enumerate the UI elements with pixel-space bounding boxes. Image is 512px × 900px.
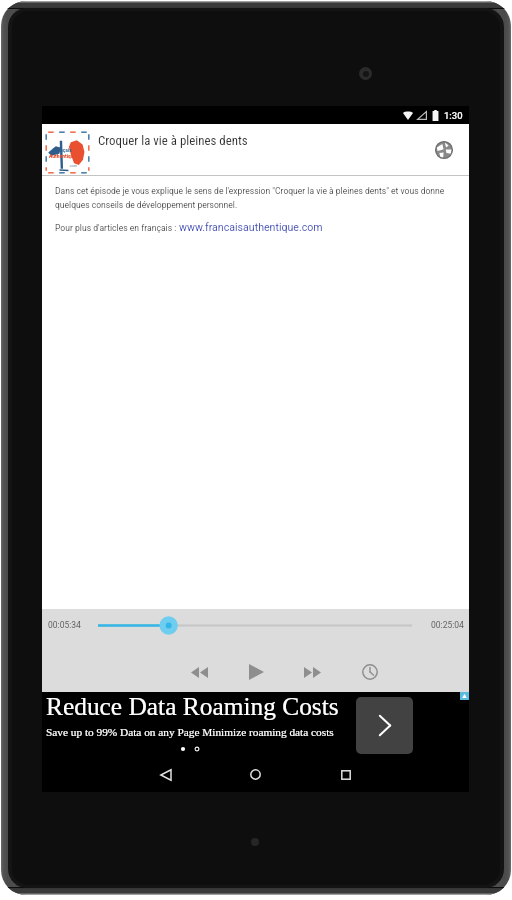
button[interactable]: Home [238,757,273,792]
button[interactable]: www.francaisauthentique.com [179,221,323,233]
button[interactable]: Play [237,653,275,691]
staticText: Save up to 99% Data on any Page Minimize… [46,726,334,739]
staticText: Pour plus d'articles en français : [55,223,179,233]
button[interactable]: Next ad [356,697,413,754]
staticText: 00:25:04 [431,620,464,630]
button[interactable]: Seek bar [88,615,422,636]
button[interactable]: Back [148,757,183,792]
staticText: 00:05:34 [48,620,81,630]
button[interactable]: Reduce Data Roaming Costs [42,692,469,757]
staticText: Dans cet épisode je vous explique le sen… [55,186,464,210]
staticText: .com [69,163,77,168]
button[interactable]: Open website [426,132,462,168]
staticText: Croquer la vie à pleines dents [98,133,248,148]
button[interactable]: Français [42,124,469,176]
staticText: Authentique [49,153,77,160]
button[interactable]: Fast forward [293,653,331,691]
button[interactable]: Sleep timer [351,653,389,691]
staticText: Français [53,147,72,154]
staticText: 1:30 [444,110,463,121]
button[interactable]: Recent apps [328,757,363,792]
button[interactable]: Rewind [180,653,218,691]
staticText: Reduce Data Roaming Costs [46,692,339,720]
